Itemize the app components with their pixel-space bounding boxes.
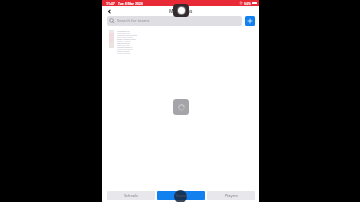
staticText: Eagles Academy United — [117, 38, 136, 40]
staticText: Schools — [124, 193, 138, 198]
staticText: 64% — [244, 1, 251, 6]
staticText: Westfield Hawks FC — [117, 46, 133, 48]
button[interactable]: Teams — [157, 191, 205, 200]
staticText: Varsity · 21 players — [117, 40, 131, 42]
staticText: Riverdale Rovers — [117, 42, 131, 44]
button[interactable]: Back — [105, 7, 113, 15]
staticText: Junior division squad — [117, 48, 133, 50]
staticText: Players — [225, 193, 238, 198]
staticText: Tue 8 Mar 2024 — [118, 1, 143, 6]
staticText: Senior club roster — [117, 44, 131, 46]
staticText: Varsity level team — [117, 32, 131, 34]
staticText: 11:47 — [106, 1, 115, 6]
staticText: Teams — [175, 193, 187, 198]
staticText: Central Cougars — [117, 50, 130, 52]
button[interactable]: Schools — [107, 191, 155, 200]
staticText: My Teams — [169, 8, 193, 15]
button[interactable]: Players — [207, 191, 255, 200]
button[interactable]: Add team — [245, 16, 255, 26]
staticText: Thunderbolts FC — [117, 30, 131, 32]
staticText: Varsity level team — [117, 52, 131, 54]
staticText: Northside Lions Academy — [117, 34, 138, 36]
button[interactable]: Search for teams — [107, 16, 242, 26]
staticText: Search for teams — [117, 18, 150, 24]
staticText: Junior division squad — [117, 36, 133, 38]
